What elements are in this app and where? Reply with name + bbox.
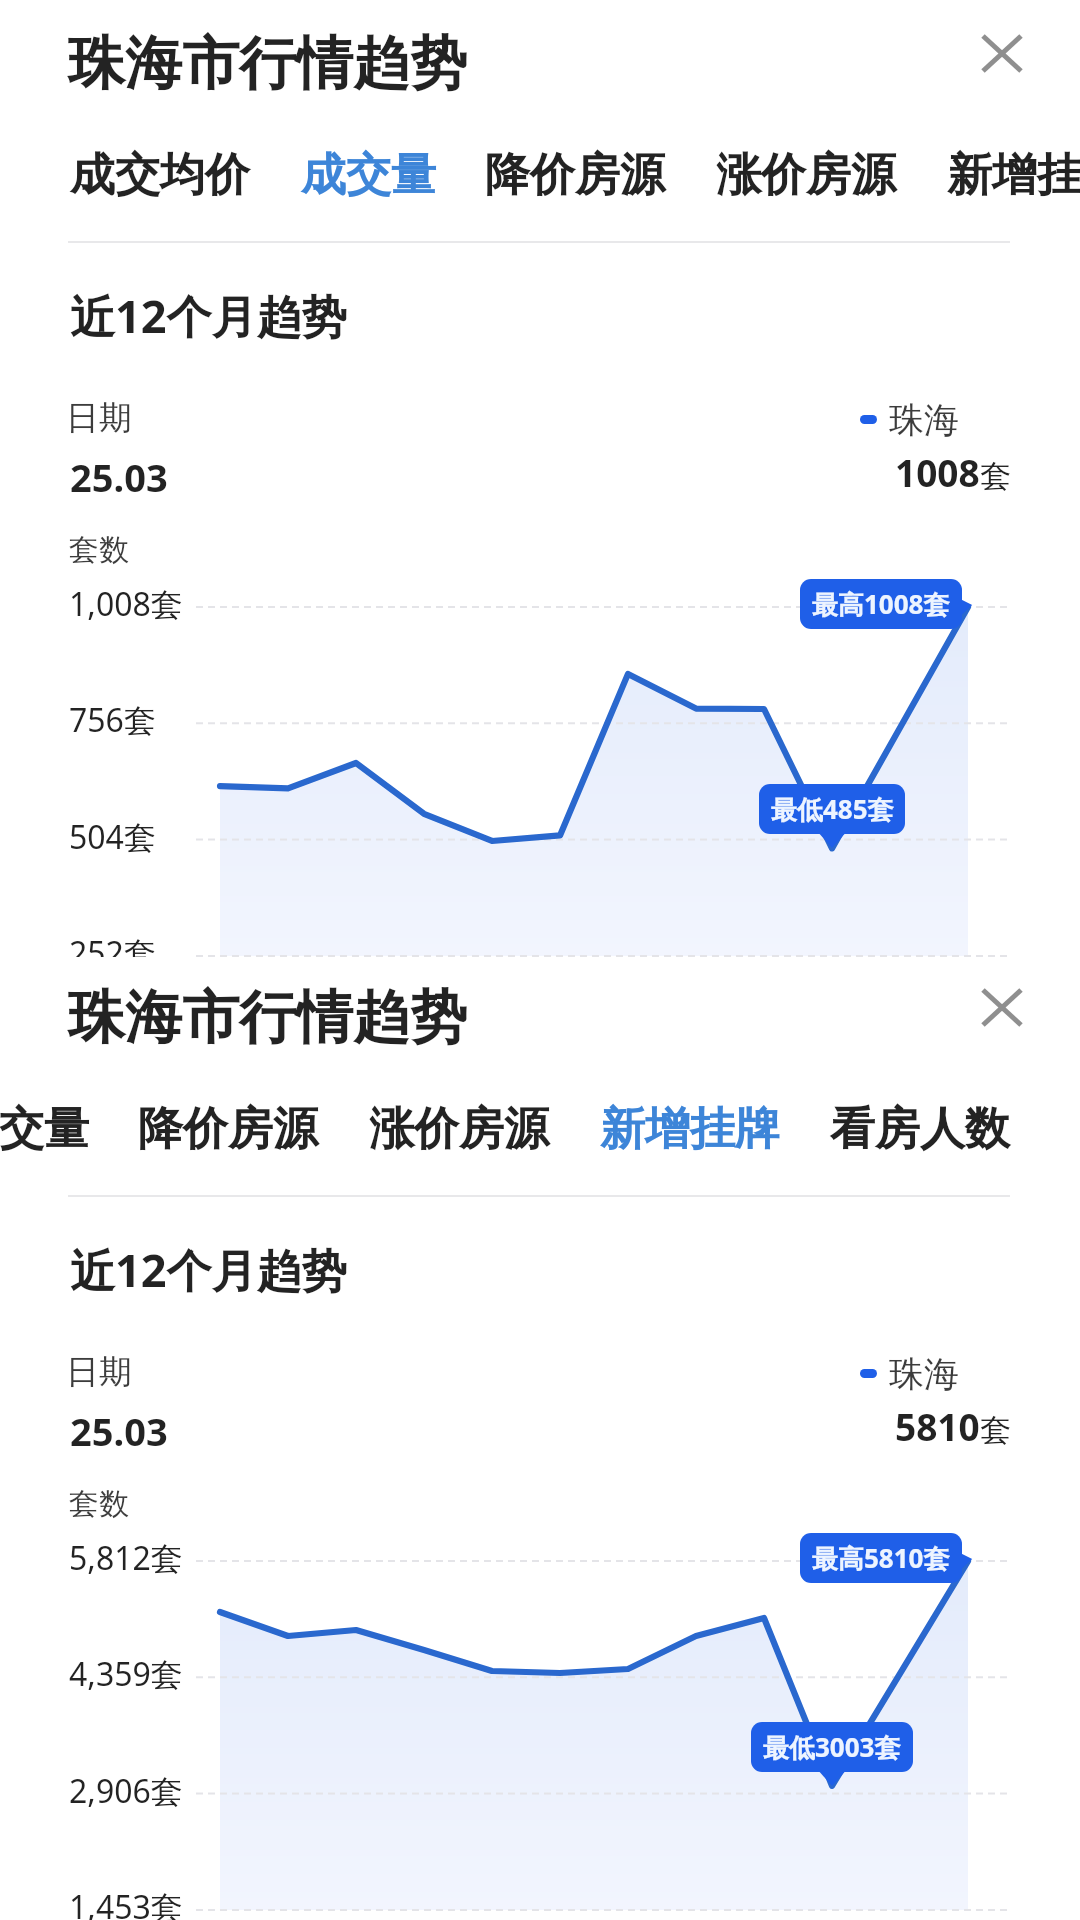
staticText: 近12个月趋势 <box>70 1239 347 1300</box>
staticText: 252套 <box>69 931 156 957</box>
button[interactable]: 涨价房源 <box>714 130 898 220</box>
staticText: 珠海 <box>889 398 959 442</box>
staticText: 最低485套 <box>771 791 894 827</box>
button[interactable]: 成交量 <box>0 1084 90 1174</box>
button[interactable]: 最低3003套 <box>751 1722 913 1772</box>
staticText: 5810 <box>895 1401 980 1451</box>
staticText: 25.03 <box>70 1405 168 1457</box>
staticText: 1,008套 <box>69 582 183 626</box>
staticText: 756套 <box>69 698 156 742</box>
staticText: 5,812套 <box>69 1536 183 1580</box>
button[interactable]: 涨价房源 <box>367 1084 551 1174</box>
staticText: 套 <box>980 457 1011 496</box>
staticText: 珠海 <box>889 1352 959 1396</box>
staticText: 套数 <box>69 531 129 569</box>
staticText: 涨价房源 <box>369 1101 549 1158</box>
button[interactable]: 看房人数 <box>828 1084 1012 1174</box>
staticText: 成交量 <box>301 147 436 204</box>
staticText: 近12个月趋势 <box>70 285 347 346</box>
button[interactable]: 降价房源 <box>483 130 667 220</box>
staticText: 日期 <box>66 1351 132 1393</box>
staticText: 套 <box>980 1411 1011 1450</box>
staticText: 最高1008套 <box>812 586 950 622</box>
staticText: 降价房源 <box>485 147 665 204</box>
staticText: 25.03 <box>70 451 168 503</box>
button[interactable]: 成交量 <box>299 130 437 220</box>
staticText: 成交量 <box>0 1101 89 1158</box>
staticText: 日期 <box>66 397 132 439</box>
button[interactable]: 新增挂牌 <box>598 1084 782 1174</box>
button[interactable]: 最高1008套 <box>800 579 962 629</box>
staticText: 最高5810套 <box>812 1540 950 1576</box>
staticText: 套数 <box>69 1485 129 1523</box>
staticText: 珠海市行情趋势 <box>68 982 467 1054</box>
staticText: 看房人数 <box>830 1101 1010 1158</box>
staticText: 1,453套 <box>69 1885 183 1920</box>
button[interactable]: 最低485套 <box>759 784 905 834</box>
staticText: 最低3003套 <box>763 1729 901 1765</box>
staticText: 4,359套 <box>69 1652 183 1696</box>
staticText: 1008 <box>895 447 980 497</box>
button[interactable]: 新增挂牌 <box>945 130 1080 220</box>
button[interactable]: Close <box>960 965 1044 1049</box>
staticText: 504套 <box>69 815 156 859</box>
button[interactable]: 成交均价 <box>68 130 252 220</box>
staticText: 涨价房源 <box>716 147 896 204</box>
staticText: 成交均价 <box>70 147 250 204</box>
staticText: 降价房源 <box>138 1101 318 1158</box>
button[interactable]: 最高5810套 <box>800 1533 962 1583</box>
staticText: 珠海市行情趋势 <box>68 28 467 100</box>
button[interactable]: 降价房源 <box>136 1084 320 1174</box>
button[interactable]: Close <box>960 11 1044 95</box>
staticText: 2,906套 <box>69 1769 183 1813</box>
staticText: 新增挂牌 <box>600 1101 780 1158</box>
staticText: 新增挂牌 <box>947 147 1080 204</box>
